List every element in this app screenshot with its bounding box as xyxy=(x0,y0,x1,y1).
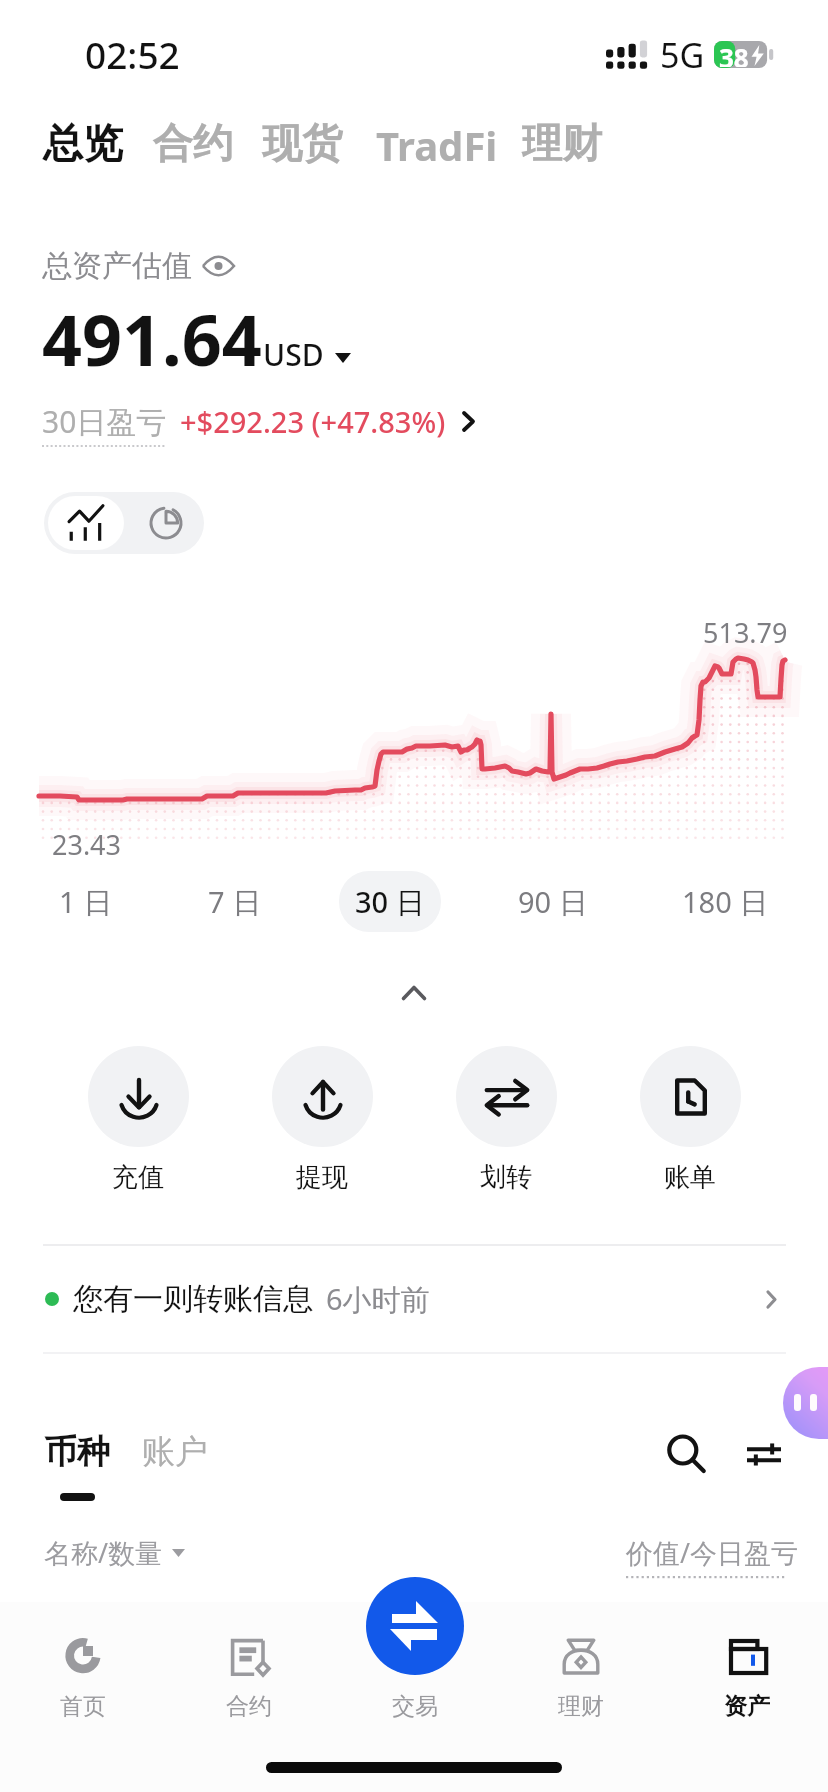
staticText: 总资产估值 xyxy=(42,247,192,285)
button[interactable]: Search xyxy=(656,1424,716,1484)
staticText: 90 日 xyxy=(518,882,588,922)
staticText: 180 日 xyxy=(682,882,769,922)
staticText: 合约 xyxy=(153,118,233,168)
button[interactable] xyxy=(675,1612,819,1730)
button[interactable] xyxy=(343,1612,487,1730)
staticText: 现货 xyxy=(262,118,342,168)
staticText: 1 日 xyxy=(59,882,113,922)
staticText: 交易 xyxy=(392,1692,438,1720)
button[interactable]: 30日盈亏 xyxy=(42,401,475,442)
button[interactable]: 划转 xyxy=(446,1046,566,1194)
staticText: 491.64 xyxy=(42,291,262,386)
button[interactable]: 价值/今日盈亏 xyxy=(626,1534,799,1571)
button[interactable]: 现货 xyxy=(256,112,348,174)
button[interactable] xyxy=(177,1612,321,1730)
button[interactable]: 合约 xyxy=(147,112,239,174)
staticText: 30 日 xyxy=(355,882,425,922)
button[interactable]: 总览 xyxy=(37,112,129,174)
staticText: 7 日 xyxy=(208,882,262,922)
button[interactable]: 名称/数量 xyxy=(44,1534,185,1571)
staticText: 6小时前 xyxy=(326,1279,430,1319)
button[interactable]: USD xyxy=(263,334,351,375)
staticText: 5G xyxy=(660,32,705,78)
button[interactable]: 90 日 xyxy=(502,871,604,932)
button[interactable]: Pie chart xyxy=(128,496,204,550)
button[interactable]: 180 日 xyxy=(674,871,776,932)
button[interactable]: 币种 xyxy=(38,1425,116,1479)
button[interactable]: 您有一则转账信息 xyxy=(0,1246,828,1352)
staticText: 您有一则转账信息 xyxy=(73,1280,313,1318)
button[interactable]: 提现 xyxy=(262,1046,382,1194)
button[interactable]: Filter xyxy=(734,1424,794,1484)
button[interactable]: 7 日 xyxy=(184,871,286,932)
staticText: TradFi xyxy=(376,118,498,172)
staticText: 理财 xyxy=(522,118,602,168)
button[interactable]: Hide balance xyxy=(42,247,235,285)
staticText: 价值/今日盈亏 xyxy=(626,1534,799,1571)
button[interactable]: 账户 xyxy=(136,1425,214,1479)
staticText: 513.79 xyxy=(703,614,788,651)
button[interactable]: Trade xyxy=(366,1577,464,1675)
button[interactable]: 30 日 xyxy=(339,871,441,932)
staticText: 账户 xyxy=(142,1431,208,1473)
staticText: 总览 xyxy=(43,118,123,168)
button[interactable]: 1 日 xyxy=(35,871,137,932)
staticText: 23.43 xyxy=(52,826,122,863)
staticText: 资产 xyxy=(724,1692,770,1720)
staticText: 首页 xyxy=(60,1692,106,1720)
button[interactable]: AI assistant xyxy=(783,1367,828,1439)
button[interactable] xyxy=(509,1612,653,1730)
button[interactable]: 理财 xyxy=(516,112,608,174)
staticText: 账单 xyxy=(664,1161,716,1194)
button[interactable]: TradFi xyxy=(370,112,504,178)
staticText: 理财 xyxy=(558,1692,604,1720)
staticText: 充值 xyxy=(112,1161,164,1194)
staticText: 38 xyxy=(719,40,749,67)
staticText: 合约 xyxy=(226,1692,272,1720)
staticText: +$292.23 (+47.83%) xyxy=(180,402,446,441)
button[interactable]: Collapse xyxy=(374,966,454,1020)
staticText: 02:52 xyxy=(85,29,180,79)
button[interactable]: 充值 xyxy=(78,1046,198,1194)
button[interactable]: 账单 xyxy=(630,1046,750,1194)
staticText: 币种 xyxy=(44,1431,110,1473)
button[interactable]: Trend chart xyxy=(48,496,124,550)
staticText: 提现 xyxy=(296,1161,348,1194)
staticText: USD xyxy=(263,334,324,375)
staticText: 名称/数量 xyxy=(44,1534,163,1571)
button[interactable] xyxy=(11,1612,155,1730)
staticText: 划转 xyxy=(480,1161,532,1194)
staticText: 30日盈亏 xyxy=(42,401,167,442)
